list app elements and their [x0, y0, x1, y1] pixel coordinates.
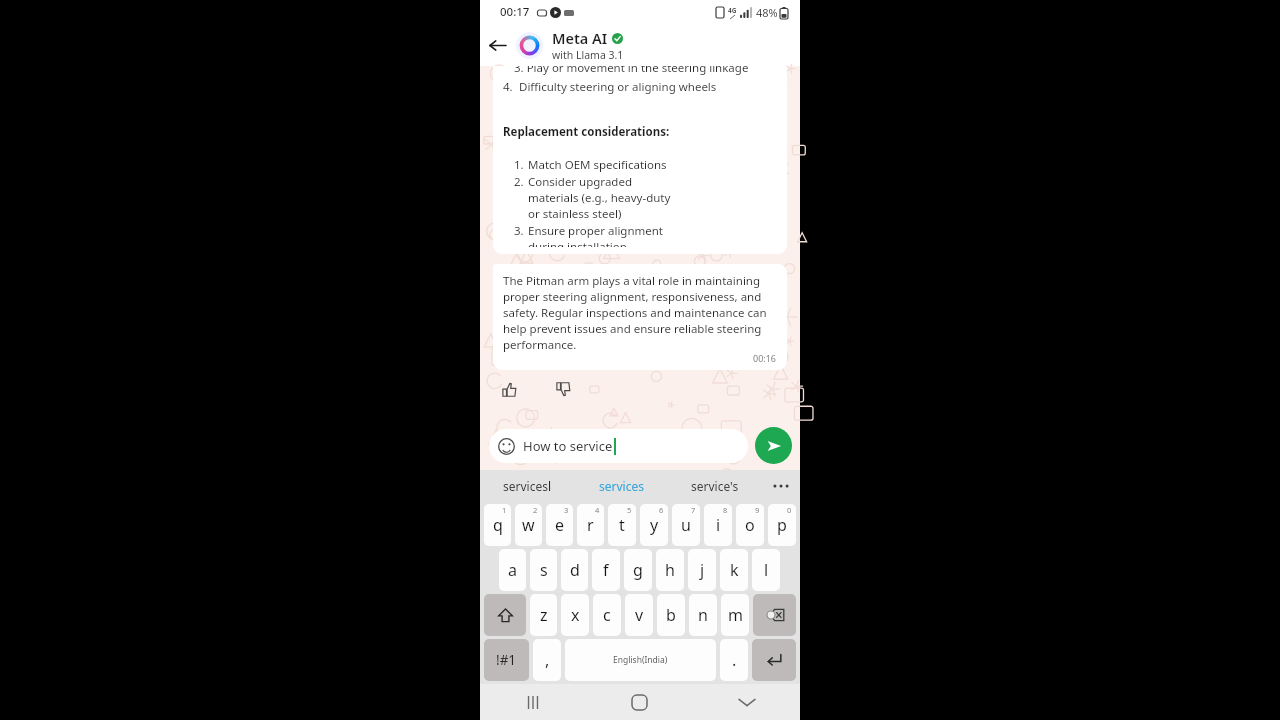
staticText: English(India) — [613, 654, 668, 666]
staticText: c — [603, 604, 611, 626]
button[interactable]: Dislike — [551, 377, 575, 401]
button[interactable]: z — [530, 594, 557, 636]
button[interactable]: m — [721, 594, 749, 636]
staticText: a — [508, 559, 517, 581]
button[interactable]: Recents — [480, 684, 586, 720]
staticText: r — [587, 514, 594, 536]
button[interactable]: Hide keyboard — [693, 684, 800, 720]
button[interactable]: More suggestions — [762, 470, 800, 501]
staticText: w — [522, 514, 535, 536]
button[interactable]: , — [533, 639, 561, 681]
staticText: services — [599, 478, 644, 494]
button[interactable]: The Pitman arm plays a vital role in mai… — [493, 264, 787, 370]
staticText: How to service — [523, 437, 613, 455]
staticText: 48% — [756, 5, 778, 20]
staticText: 5 — [627, 505, 632, 515]
button[interactable]: b — [657, 594, 685, 636]
button[interactable]: p — [768, 504, 796, 546]
staticText: 00:17 — [500, 4, 530, 20]
button[interactable]: a — [499, 549, 526, 591]
staticText: 2. — [514, 174, 528, 190]
button[interactable]: h — [656, 549, 684, 591]
button[interactable]: e — [546, 504, 573, 546]
staticText: b — [666, 604, 676, 626]
button[interactable]: . — [720, 639, 748, 681]
button[interactable]: Enter — [752, 639, 796, 681]
staticText: i — [716, 514, 721, 536]
staticText: Match OEM specifications — [528, 157, 680, 173]
staticText: Ensure proper alignment during installat… — [528, 223, 680, 247]
button[interactable]: !#1 — [484, 639, 529, 681]
button[interactable]: i — [704, 504, 732, 546]
button[interactable]: k — [720, 549, 748, 591]
staticText: 0 — [787, 505, 792, 515]
staticText: 6 — [659, 505, 664, 515]
button[interactable]: t — [608, 504, 636, 546]
staticText: 4 — [595, 505, 600, 515]
staticText: x — [571, 604, 580, 626]
staticText: d — [570, 559, 580, 581]
button[interactable]: r — [577, 504, 604, 546]
staticText: !#1 — [496, 651, 517, 669]
staticText: e — [555, 514, 565, 536]
staticText: n — [698, 604, 708, 626]
button[interactable]: Shift — [484, 594, 526, 636]
button[interactable]: c — [593, 594, 621, 636]
staticText: 1 — [502, 505, 507, 515]
button[interactable]: service's — [668, 470, 762, 501]
button[interactable]: services — [574, 470, 668, 501]
staticText: 3 — [564, 505, 569, 515]
button[interactable]: w — [515, 504, 542, 546]
staticText: v — [635, 604, 644, 626]
staticText: 9 — [755, 505, 760, 515]
staticText: h — [665, 559, 675, 581]
button[interactable]: How to service — [489, 429, 748, 463]
staticText: s — [540, 559, 548, 581]
button[interactable]: x — [561, 594, 589, 636]
staticText: m — [728, 604, 743, 626]
button[interactable]: Back — [480, 28, 514, 62]
button[interactable]: Like — [497, 377, 521, 401]
button[interactable]: f — [592, 549, 620, 591]
button[interactable]: n — [689, 594, 717, 636]
staticText: service's — [691, 478, 739, 494]
button[interactable]: Send — [755, 427, 792, 464]
button[interactable]: v — [625, 594, 653, 636]
button[interactable]: d — [561, 549, 588, 591]
button[interactable]: y — [640, 504, 668, 546]
staticText: y — [650, 514, 659, 536]
staticText: 1. — [514, 157, 528, 173]
button[interactable]: o — [736, 504, 764, 546]
staticText: f — [603, 559, 609, 581]
staticText: k — [730, 559, 739, 581]
staticText: Difficulty steering or aligning wheels — [519, 79, 717, 95]
staticText: servicesl — [503, 478, 552, 494]
staticText: . — [732, 649, 737, 671]
staticText: p — [777, 514, 787, 536]
staticText: 3. Play or movement in the steering link… — [514, 66, 749, 76]
staticText: u — [681, 514, 691, 536]
staticText: 7 — [691, 505, 696, 515]
staticText: t — [619, 514, 625, 536]
staticText: with Llama 3.1 — [552, 48, 624, 62]
button[interactable]: English(India) — [565, 639, 716, 681]
staticText: o — [745, 514, 755, 536]
button[interactable]: Home — [586, 684, 693, 720]
button[interactable]: g — [624, 549, 652, 591]
staticText: g — [633, 559, 643, 581]
button[interactable]: servicesl — [480, 470, 574, 501]
button[interactable]: Backspace — [753, 594, 796, 636]
button[interactable]: u — [672, 504, 700, 546]
staticText: q — [493, 514, 503, 536]
staticText: Meta AI — [552, 28, 608, 48]
staticText: 8 — [723, 505, 728, 515]
staticText: l — [764, 559, 769, 581]
button[interactable]: j — [688, 549, 716, 591]
button[interactable]: 3. Play or movement in the steering link… — [493, 66, 787, 254]
button[interactable]: q — [484, 504, 511, 546]
button[interactable]: s — [530, 549, 557, 591]
staticText: z — [540, 604, 548, 626]
staticText: Consider upgraded materials (e.g., heavy… — [528, 174, 680, 222]
button[interactable]: l — [752, 549, 780, 591]
staticText: Replacement considerations: — [503, 124, 670, 140]
